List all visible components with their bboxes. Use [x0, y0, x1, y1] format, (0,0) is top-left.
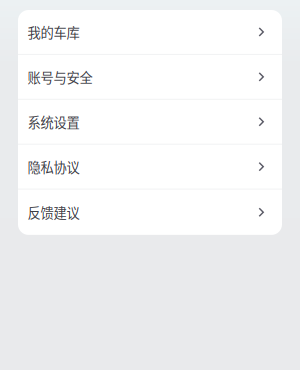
button[interactable]: 反馈建议 [18, 190, 282, 235]
button[interactable]: 系统设置 [18, 100, 282, 144]
button[interactable]: 账号与安全 [18, 55, 282, 99]
staticText: 隐私协议 [27, 157, 79, 176]
button[interactable]: 我的车库 [18, 10, 282, 54]
staticText: 反馈建议 [27, 203, 79, 222]
staticText: 系统设置 [27, 112, 79, 131]
staticText: 账号与安全 [27, 67, 92, 86]
button[interactable]: 隐私协议 [18, 145, 282, 189]
staticText: 我的车库 [27, 22, 79, 42]
